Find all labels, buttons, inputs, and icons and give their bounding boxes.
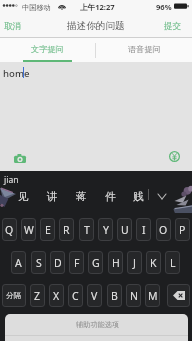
button[interactable]: G [88,251,103,274]
button[interactable]: I [136,218,151,241]
staticText: D [54,256,62,270]
staticText: M [148,289,158,303]
staticText: 蒋 [76,190,87,203]
staticText: C [72,289,79,303]
staticText: 文字提问 [31,44,64,54]
button[interactable]: L [165,251,180,274]
staticText: F [74,256,80,270]
button[interactable]: 取消 [4,21,22,32]
button[interactable]: V [87,284,102,307]
button[interactable]: X [49,284,64,307]
button[interactable]: 讲 [39,187,65,205]
button[interactable]: O [156,218,171,241]
staticText: K [150,256,157,270]
button[interactable]: 贱 [125,187,151,205]
button[interactable]: S [31,251,46,274]
staticText: 贱 [133,190,144,203]
button[interactable]: 语音提问 [96,38,192,62]
staticText: J [133,256,136,270]
staticText: B [111,289,118,303]
staticText: Z [34,289,41,303]
staticText: jian [4,174,19,186]
staticText: S [36,256,42,270]
button[interactable]: More candidates [153,187,170,205]
staticText: O [159,223,168,237]
staticText: 描述你的问题 [67,20,125,32]
staticText: 上午12:27 [80,2,115,12]
button[interactable]: C [68,284,83,307]
staticText: A [15,256,22,270]
button[interactable]: N [126,284,141,307]
staticText: 见 [18,190,29,203]
button[interactable]: 分隔 [2,284,26,307]
staticText: home [3,67,30,80]
button[interactable]: W [21,218,36,241]
staticText: Q [5,223,14,237]
staticText: 提交 [164,21,182,32]
button[interactable]: M [145,284,160,307]
staticText: L [170,256,176,270]
staticText: U [121,223,129,237]
staticText: E [45,223,51,237]
staticText: 件 [105,190,116,203]
staticText: 讲 [47,190,58,203]
staticText: 中国移动 [22,3,51,12]
staticText: 语音提问 [128,44,161,54]
button[interactable]: 辅助功能选项 [5,314,188,341]
button[interactable]: T [79,218,94,241]
button[interactable]: Q [2,218,17,241]
button[interactable]: Add photo [10,148,30,168]
button[interactable]: Z [30,284,45,307]
button[interactable]: 文字提问 [0,38,95,62]
staticText: 辅助功能选项 [76,320,120,329]
button[interactable]: B [107,284,122,307]
button[interactable]: Reward [164,146,184,166]
button[interactable]: P [175,218,190,241]
button[interactable]: 件 [97,187,123,205]
button[interactable]: 蒋 [68,187,94,205]
button[interactable]: D [50,251,65,274]
button[interactable]: A [11,251,26,274]
button[interactable]: U [117,218,132,241]
staticText: H [112,256,120,270]
staticText: 分隔 [6,291,22,301]
staticText: R [63,223,70,237]
staticText: X [53,289,60,303]
staticText: W [24,223,34,237]
button[interactable]: F [69,251,84,274]
staticText: G [92,256,100,270]
staticText: 96% [156,2,172,12]
staticText: 取消 [4,21,22,32]
staticText: V [91,289,98,303]
button[interactable]: E [40,218,55,241]
button[interactable]: 提交 [164,21,182,32]
staticText: N [130,289,138,303]
staticText: T [84,223,90,237]
button[interactable]: Y [98,218,113,241]
button[interactable]: H [108,251,123,274]
button[interactable]: K [146,251,161,274]
button[interactable]: J [127,251,142,274]
staticText: Y [103,223,109,237]
button[interactable]: Backspace [167,284,190,307]
button[interactable]: R [59,218,74,241]
staticText: I [142,223,146,237]
staticText: P [179,223,186,237]
button[interactable]: 见 [10,187,36,205]
